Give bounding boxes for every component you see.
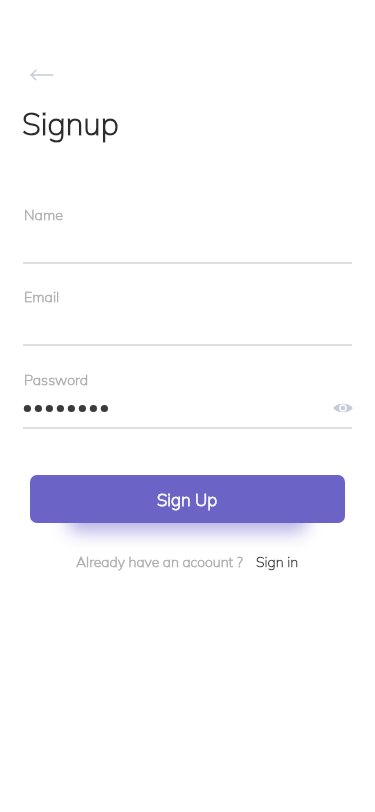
button[interactable]: Sign in bbox=[256, 553, 299, 571]
staticText: Password bbox=[24, 371, 89, 389]
staticText: Name bbox=[24, 206, 63, 224]
button[interactable]: Back bbox=[19, 57, 59, 93]
button[interactable]: Sign Up bbox=[30, 475, 345, 523]
staticText: Signup bbox=[22, 104, 119, 143]
staticText: Sign Up bbox=[157, 489, 218, 510]
staticText: Email bbox=[24, 288, 60, 306]
staticText: Already have an acoount ? bbox=[76, 553, 243, 571]
button[interactable]: Show password bbox=[329, 394, 357, 422]
